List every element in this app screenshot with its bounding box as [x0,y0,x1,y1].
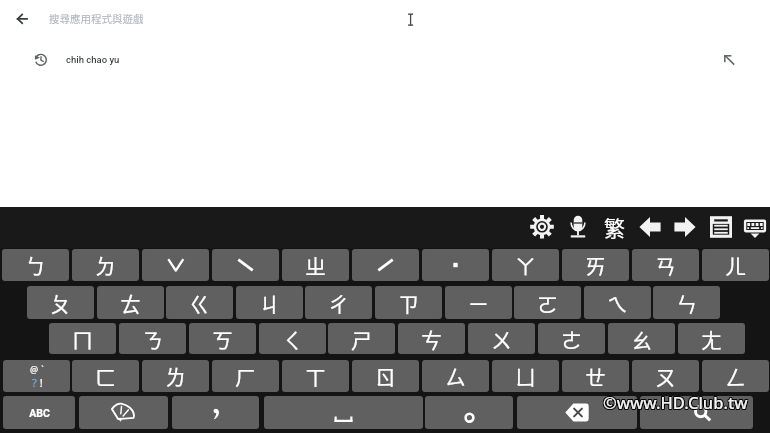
button[interactable]: Settings [528,207,556,247]
staticText: ㄇ [72,324,93,354]
button[interactable]: Backspace [517,396,637,429]
staticText: ㄓ [305,250,326,280]
staticText: 搜尋應用程式與遊戲 [49,11,144,26]
button[interactable]: ㄨ [468,323,535,354]
staticText: ㄩ [515,361,536,391]
button[interactable]: ㄅ [2,249,69,281]
button[interactable]: chih chao yu [0,46,770,74]
button[interactable]: Clipboard [706,207,736,247]
staticText: ㄆ [50,288,71,318]
button[interactable]: ㄇ [49,323,116,354]
staticText: ©www.HD.Club.tw [604,390,749,412]
staticText: ㄣ [676,288,697,318]
staticText: ㄝ [585,361,606,391]
button[interactable]: ㄖ [352,360,419,392]
staticText: ˋ [39,363,44,375]
staticText: @ [30,363,39,375]
staticText: ㄊ [120,288,141,318]
button[interactable]: Third tone [142,249,209,281]
button[interactable]: ㄎ [189,323,256,354]
staticText: ©www.HD.Club.tw [604,391,749,413]
button[interactable]: ㄡ [632,360,699,392]
staticText: ㄘ [421,324,442,354]
button[interactable]: ㄝ [562,360,629,392]
button[interactable]: ㄍ [166,286,233,319]
button[interactable]: ㄤ [678,323,745,354]
button[interactable]: Symbols [3,360,70,392]
button[interactable]: ㄥ [702,360,769,392]
button[interactable]: ㄊ [97,286,164,319]
button[interactable]: Fourth tone [212,249,279,281]
button[interactable]: Emoji [79,396,168,429]
staticText: ©www.HD.Club.tw [604,392,749,414]
staticText: ㄏ [235,361,256,391]
staticText: ©www.HD.Club.tw [602,392,747,414]
staticText: ㄒ [305,361,326,391]
button[interactable]: ㄦ [702,249,769,281]
button[interactable]: Space [264,396,423,429]
button[interactable]: Hide keyboard [740,207,770,247]
button[interactable]: ㄜ [538,323,605,354]
staticText: ㄧ [468,288,489,318]
button[interactable]: ㄓ [282,249,349,281]
button[interactable]: ㄑ [259,323,326,354]
button[interactable]: ㄢ [632,249,699,281]
button[interactable]: ㄉ [72,249,139,281]
staticText: ㄡ [655,361,676,391]
button[interactable]: ㄣ [653,286,720,319]
staticText: 繁 [604,212,625,242]
button[interactable]: Neutral tone [422,249,489,281]
staticText: ㄞ [585,250,606,280]
button[interactable]: Full stop [425,396,513,429]
button[interactable]: Insert suggestion [718,48,742,72]
button[interactable]: ABC [3,396,75,429]
staticText: ㄌ [165,361,186,391]
staticText: ! [37,375,43,390]
staticText: ㄈ [95,361,116,391]
button[interactable]: Second tone [352,249,419,281]
button[interactable]: Comma [172,396,259,429]
button[interactable]: ㄟ [584,286,651,319]
button[interactable]: Voice input [564,207,592,247]
staticText: ㄍ [189,288,210,318]
button[interactable]: ㄠ [608,323,675,354]
staticText: ㄔ [328,288,349,318]
staticText: ㄎ [212,324,233,354]
button[interactable]: ㄧ [445,286,512,319]
button[interactable]: Search [640,396,753,429]
button[interactable]: ㄏ [212,360,279,392]
button[interactable]: ㄕ [328,323,395,354]
button[interactable]: ㄘ [398,323,465,354]
button[interactable]: ㄩ [492,360,559,392]
button[interactable]: ㄌ [142,360,209,392]
staticText: ㄜ [561,324,582,354]
button[interactable]: ㄞ [562,249,629,281]
staticText: ㄐ [259,288,280,318]
button[interactable]: ㄆ [27,286,94,319]
staticText: ㄅ [25,250,46,280]
button[interactable]: ㄒ [282,360,349,392]
staticText: ㄕ [351,324,372,354]
staticText: ㄖ [375,361,396,391]
button[interactable]: ㄛ [514,286,581,319]
button[interactable]: 繁 [600,207,628,247]
staticText: ㄥ [725,361,746,391]
button[interactable]: Move cursor left [635,207,665,247]
staticText: ABC [29,407,50,419]
staticText: ? [32,375,37,390]
button[interactable]: ㄈ [72,360,139,392]
staticText: ㄑ [282,324,303,354]
button[interactable]: ㄚ [492,249,559,281]
button[interactable]: ㄐ [236,286,303,319]
button[interactable]: ㄋ [119,323,186,354]
staticText: ㄉ [95,250,116,280]
button[interactable]: Move cursor right [670,207,700,247]
staticText: ©www.HD.Club.tw [603,392,748,414]
staticText: ㄙ [445,361,466,391]
button[interactable]: ㄙ [422,360,489,392]
button[interactable]: ㄔ [305,286,372,319]
staticText: ㄦ [725,250,746,280]
staticText: ㄟ [607,288,628,318]
button[interactable]: ㄗ [375,286,442,319]
button[interactable]: Back [6,5,36,33]
